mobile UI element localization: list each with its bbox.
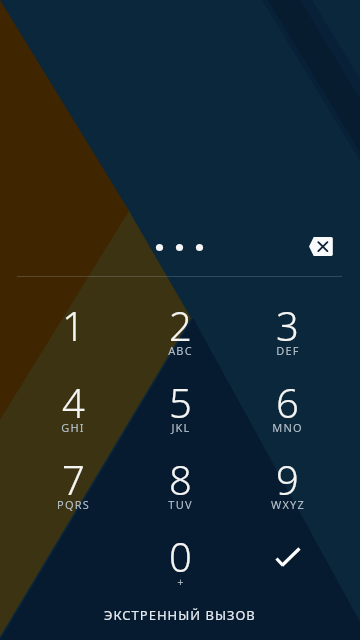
staticText: ABC	[168, 343, 193, 358]
staticText: PQRS	[57, 497, 90, 512]
staticText: 1	[62, 298, 85, 349]
button[interactable]: Backspace	[301, 228, 341, 264]
staticText: WXYZ	[271, 497, 305, 512]
button[interactable]: 3	[234, 298, 341, 375]
button[interactable]: 9	[234, 452, 341, 529]
button[interactable]: Confirm	[234, 529, 341, 606]
staticText: MNO	[272, 420, 303, 435]
staticText: 6	[276, 375, 299, 426]
staticText: 7	[62, 452, 85, 503]
staticText: 0	[169, 529, 192, 580]
button[interactable]: 6	[234, 375, 341, 452]
staticText: DEF	[276, 343, 300, 358]
staticText: JKL	[171, 420, 191, 435]
staticText: TUV	[168, 497, 193, 512]
staticText: 4	[62, 375, 85, 426]
button[interactable]: 8	[127, 452, 234, 529]
button[interactable]: 2	[127, 298, 234, 375]
staticText: 2	[169, 298, 192, 349]
staticText: 9	[276, 452, 299, 503]
button[interactable]: 0	[127, 529, 234, 606]
staticText: 3	[276, 298, 299, 349]
staticText: 8	[169, 452, 192, 503]
staticText: GHI	[61, 420, 85, 435]
button[interactable]: 1	[19, 298, 127, 375]
staticText: 5	[169, 375, 192, 426]
staticText: ЭКСТРЕННЫЙ ВЫЗОВ	[104, 606, 256, 624]
button[interactable]: ЭКСТРЕННЫЙ ВЫЗОВ	[0, 592, 360, 640]
staticText: +	[177, 574, 185, 589]
button[interactable]: 4	[19, 375, 127, 452]
button[interactable]: 7	[19, 452, 127, 529]
button[interactable]: 5	[127, 375, 234, 452]
